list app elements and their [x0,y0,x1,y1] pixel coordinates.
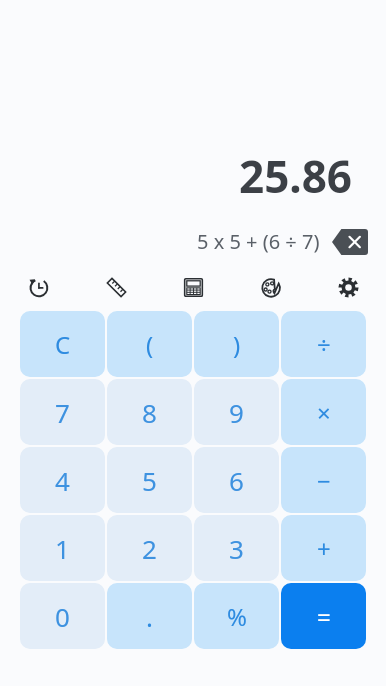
button[interactable]: ÷ [281,311,366,377]
button[interactable]: − [281,447,366,513]
button[interactable]: . [107,583,192,649]
button[interactable]: 2 [107,515,192,581]
button[interactable]: ) [194,311,279,377]
staticText: % [227,600,247,633]
button[interactable]: 0 [20,583,105,649]
staticText: 2 [142,531,157,566]
staticText: + [317,532,331,565]
button[interactable]: 6 [194,447,279,513]
staticText: × [317,396,331,429]
staticText: 8 [142,395,157,430]
button[interactable]: 8 [107,379,192,445]
button[interactable]: 9 [194,379,279,445]
button[interactable]: 5 [107,447,192,513]
button[interactable]: Unit converter [98,269,134,305]
staticText: C [55,328,71,361]
button[interactable]: % [194,583,279,649]
staticText: 25.86 [238,146,352,206]
staticText: ( [146,328,154,361]
staticText: ÷ [317,328,331,361]
button[interactable]: C [20,311,105,377]
staticText: ) [233,328,241,361]
staticText: 6 [229,463,244,498]
button[interactable]: Backspace [332,229,368,255]
button[interactable]: History [20,269,56,305]
button[interactable]: × [281,379,366,445]
staticText: 1 [55,531,70,566]
button[interactable]: 3 [194,515,279,581]
button[interactable]: 4 [20,447,105,513]
staticText: 9 [229,395,244,430]
button[interactable]: ( [107,311,192,377]
button[interactable]: 1 [20,515,105,581]
button[interactable]: Themes [253,269,289,305]
staticText: 0 [55,599,70,634]
button[interactable]: Scientific calculator [175,269,211,305]
staticText: 3 [229,531,244,566]
staticText: 4 [55,463,70,498]
button[interactable]: 7 [20,379,105,445]
staticText: 5 x 5 + (6 ÷ 7) [197,228,320,255]
button[interactable]: + [281,515,366,581]
staticText: 5 [142,463,157,498]
staticText: − [317,464,331,497]
staticText: = [317,600,331,633]
staticText: 7 [55,395,70,430]
button[interactable]: = [281,583,366,649]
button[interactable]: Settings [330,269,366,305]
staticText: . [146,599,153,634]
